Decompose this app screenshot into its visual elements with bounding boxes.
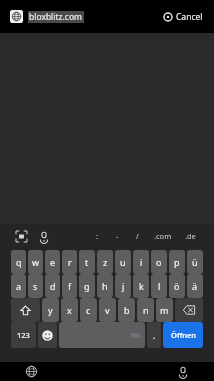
staticText: x xyxy=(67,304,72,316)
button[interactable]: m xyxy=(156,298,173,322)
staticText: m xyxy=(160,304,169,316)
staticText: Cancel xyxy=(176,11,203,23)
staticText: a xyxy=(16,280,22,292)
button[interactable]: r xyxy=(62,250,77,274)
staticText: n xyxy=(143,304,149,316)
staticText: k xyxy=(139,280,144,292)
button[interactable]: u xyxy=(115,250,131,274)
staticText: j xyxy=(122,280,125,292)
button[interactable]: ä xyxy=(187,274,203,298)
button[interactable]: Emoji xyxy=(38,322,57,348)
staticText: d xyxy=(50,280,56,292)
staticText: e xyxy=(50,256,56,268)
button[interactable]: s xyxy=(28,274,43,298)
staticText: / xyxy=(136,231,139,241)
button[interactable]: .de xyxy=(180,227,201,245)
button[interactable]: t xyxy=(79,250,95,274)
button[interactable]: Scan text xyxy=(13,228,30,245)
button[interactable]: bloxblitz.com xyxy=(10,10,162,23)
button[interactable]: Change language xyxy=(24,364,39,379)
staticText: .de xyxy=(185,231,196,241)
button[interactable]: a xyxy=(11,274,26,298)
button[interactable]: g xyxy=(79,274,95,298)
button[interactable]: k xyxy=(133,274,149,298)
staticText: ö xyxy=(174,280,180,292)
button[interactable]: ü xyxy=(187,250,203,274)
staticText: r xyxy=(68,256,72,268)
staticText: . xyxy=(153,330,156,341)
button[interactable]: : xyxy=(89,227,106,245)
staticText: ä xyxy=(192,280,198,292)
button[interactable]: Space xyxy=(59,322,145,348)
staticText: Öffnen xyxy=(171,330,196,340)
button[interactable]: Öffnen xyxy=(163,322,203,348)
staticText: b xyxy=(124,304,130,316)
button[interactable]: . xyxy=(147,322,161,348)
button[interactable]: h xyxy=(97,274,113,298)
button[interactable]: n xyxy=(137,298,154,322)
staticText: u xyxy=(120,256,126,268)
staticText: g xyxy=(84,280,90,292)
staticText: - xyxy=(116,231,119,241)
staticText: ü xyxy=(192,256,198,268)
button[interactable]: x xyxy=(61,298,78,322)
staticText: : xyxy=(96,231,99,241)
staticText: t xyxy=(85,256,89,268)
staticText: bloxblitz.com xyxy=(29,11,83,23)
staticText: h xyxy=(102,280,108,292)
staticText: q xyxy=(16,256,22,268)
staticText: o xyxy=(156,256,162,268)
staticText: 123 xyxy=(17,330,30,340)
button[interactable]: e xyxy=(45,250,60,274)
staticText: s xyxy=(33,280,38,292)
button[interactable]: i xyxy=(133,250,149,274)
button[interactable]: y xyxy=(42,298,59,322)
staticText: v xyxy=(105,304,110,316)
staticText: .com xyxy=(154,231,172,241)
button[interactable]: .com xyxy=(149,227,177,245)
staticText: f xyxy=(68,280,72,292)
staticText: y xyxy=(48,304,53,316)
staticText: l xyxy=(158,280,161,292)
button[interactable]: w xyxy=(28,250,43,274)
staticText: i xyxy=(140,256,143,268)
button[interactable]: / xyxy=(129,227,146,245)
button[interactable]: d xyxy=(45,274,60,298)
button[interactable]: b xyxy=(118,298,135,322)
staticText: c xyxy=(86,304,91,316)
button[interactable]: c xyxy=(80,298,97,322)
button[interactable]: ö xyxy=(169,274,185,298)
button[interactable]: 123 xyxy=(11,322,36,348)
button[interactable]: v xyxy=(99,298,116,322)
button[interactable]: Voice search xyxy=(175,364,190,379)
staticText: z xyxy=(103,256,108,268)
button[interactable]: Voice input xyxy=(35,228,52,245)
staticText: p xyxy=(174,256,180,268)
button[interactable]: Shift xyxy=(11,298,40,322)
staticText: w xyxy=(32,256,40,268)
button[interactable]: q xyxy=(11,250,26,274)
button[interactable]: Backspace xyxy=(175,298,203,322)
button[interactable]: l xyxy=(151,274,167,298)
button[interactable]: - xyxy=(109,227,126,245)
button[interactable]: j xyxy=(115,274,131,298)
button[interactable]: f xyxy=(62,274,77,298)
button[interactable]: z xyxy=(97,250,113,274)
button[interactable]: o xyxy=(151,250,167,274)
button[interactable]: p xyxy=(169,250,185,274)
button[interactable]: Cancel xyxy=(162,7,205,27)
